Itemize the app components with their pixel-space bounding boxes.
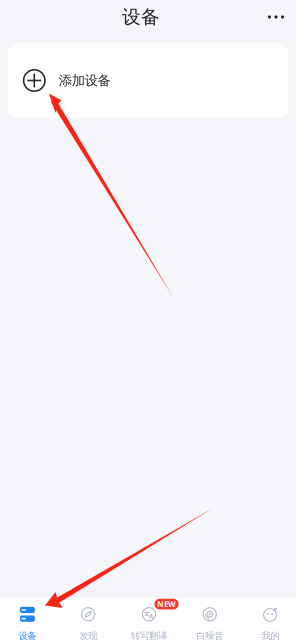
button[interactable]: 发现: [58, 599, 119, 643]
button[interactable]: 设备: [0, 599, 58, 643]
button[interactable]: 添加设备: [8, 43, 288, 118]
staticText: 发现: [79, 630, 97, 642]
staticText: 转写翻译: [131, 630, 167, 642]
staticText: 白噪音: [196, 630, 223, 642]
staticText: 我的: [262, 630, 280, 642]
button[interactable]: 我的: [240, 599, 296, 643]
button[interactable]: 白噪音: [179, 599, 240, 643]
staticText: 设备: [18, 630, 36, 642]
button[interactable]: NEW: [119, 599, 179, 643]
staticText: 设备: [122, 5, 160, 28]
staticText: NEW: [157, 599, 176, 609]
staticText: 添加设备: [59, 72, 111, 89]
button[interactable]: More options: [256, 0, 296, 34]
